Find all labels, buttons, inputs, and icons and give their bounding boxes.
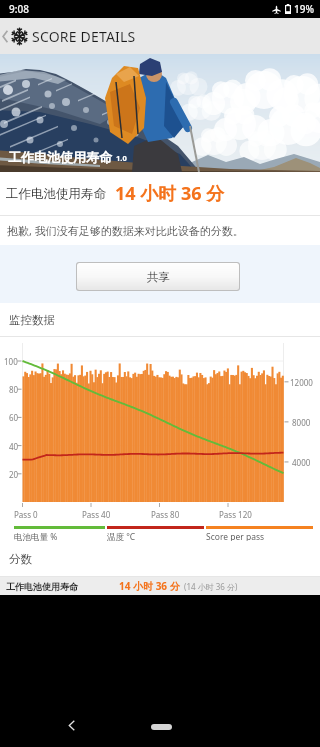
staticText: 8000 bbox=[292, 417, 311, 428]
staticText: 工作电池使用寿命 bbox=[6, 581, 78, 592]
button[interactable]: Home bbox=[151, 724, 172, 730]
staticText: 40 bbox=[9, 441, 19, 452]
staticText: 19% bbox=[294, 2, 314, 16]
staticText: 60 bbox=[9, 412, 19, 423]
button[interactable]: Back bbox=[58, 712, 84, 738]
staticText: (14 小时 36 分) bbox=[184, 581, 238, 592]
staticText: Pass 40 bbox=[82, 509, 111, 520]
staticText: 14 小时 36 分 bbox=[115, 181, 225, 206]
staticText: 工作电池使用寿命 bbox=[6, 186, 106, 202]
staticText: 分数 bbox=[9, 552, 32, 566]
staticText: 20 bbox=[9, 469, 19, 480]
button[interactable]: 工作电池使用寿命 bbox=[0, 577, 320, 595]
staticText: 1.0 bbox=[116, 153, 127, 163]
button[interactable]: Back bbox=[0, 18, 10, 54]
staticText: 80 bbox=[9, 384, 19, 395]
staticText: 温度 °C bbox=[107, 531, 136, 543]
staticText: Pass 0 bbox=[14, 509, 38, 520]
staticText: SCORE DETAILS bbox=[32, 27, 136, 46]
staticText: 共享 bbox=[147, 270, 170, 284]
staticText: 4000 bbox=[292, 457, 311, 468]
staticText: 工作电池使用寿命 bbox=[8, 149, 112, 165]
staticText: 抱歉, 我们没有足够的数据来对比此设备的分数。 bbox=[7, 223, 244, 238]
staticText: Pass 80 bbox=[151, 509, 180, 520]
staticText: Score per pass bbox=[206, 531, 265, 543]
staticText: 14 小时 36 分 bbox=[119, 579, 180, 593]
staticText: 电池电量 % bbox=[14, 531, 58, 543]
staticText: 9:08 bbox=[9, 2, 29, 16]
staticText: 监控数据 bbox=[9, 313, 55, 327]
staticText: 100 bbox=[4, 356, 18, 367]
button[interactable]: 共享 bbox=[77, 263, 239, 290]
staticText: Pass 120 bbox=[219, 509, 252, 520]
staticText: 12000 bbox=[290, 377, 313, 388]
